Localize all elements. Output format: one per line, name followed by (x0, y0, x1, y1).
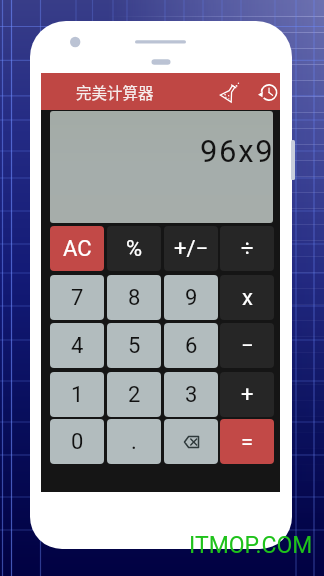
staticText: ÷ (241, 236, 254, 262)
staticText: 4 (71, 333, 84, 359)
button[interactable]: 6 (164, 323, 218, 368)
button[interactable]: 7 (50, 275, 104, 320)
button[interactable]: ÷ (220, 226, 274, 271)
button[interactable]: + (220, 372, 274, 417)
staticText: AC (63, 236, 92, 262)
button[interactable]: 9 (164, 275, 218, 320)
staticText: 1 (71, 382, 84, 408)
button[interactable]: 8 (107, 275, 161, 320)
staticText: 5 (128, 333, 141, 359)
staticText: 7 (71, 285, 84, 311)
button[interactable] (164, 419, 218, 464)
staticText: x (242, 285, 253, 311)
staticText: − (241, 333, 254, 359)
button[interactable]: % (107, 226, 161, 271)
button[interactable]: x (220, 275, 274, 320)
staticText: 96x9 (200, 133, 273, 169)
button[interactable]: 3 (164, 372, 218, 417)
button[interactable]: 4 (50, 323, 104, 368)
button[interactable]: 1 (50, 372, 104, 417)
button[interactable]: +/− (164, 226, 218, 271)
staticText: ITMOP.COM (189, 532, 313, 559)
staticText: + (241, 382, 254, 408)
button[interactable]: . (107, 419, 161, 464)
button[interactable]: Scientific mode (220, 82, 240, 102)
staticText: 3 (185, 382, 198, 408)
button[interactable]: AC (50, 226, 104, 271)
button[interactable]: − (220, 323, 274, 368)
staticText: 8 (128, 285, 141, 311)
staticText: +/− (174, 236, 209, 262)
staticText: % (126, 236, 143, 262)
staticText: 2 (128, 382, 141, 408)
staticText: . (131, 429, 137, 455)
button[interactable]: 0 (50, 419, 104, 464)
button[interactable]: History (257, 82, 277, 102)
button[interactable]: 5 (107, 323, 161, 368)
staticText: 9 (185, 285, 198, 311)
button[interactable]: = (220, 419, 274, 464)
staticText: 6 (185, 333, 198, 359)
staticText: = (241, 429, 254, 455)
button[interactable]: 2 (107, 372, 161, 417)
staticText: 完美计算器 (76, 81, 154, 103)
staticText: 0 (71, 429, 84, 455)
